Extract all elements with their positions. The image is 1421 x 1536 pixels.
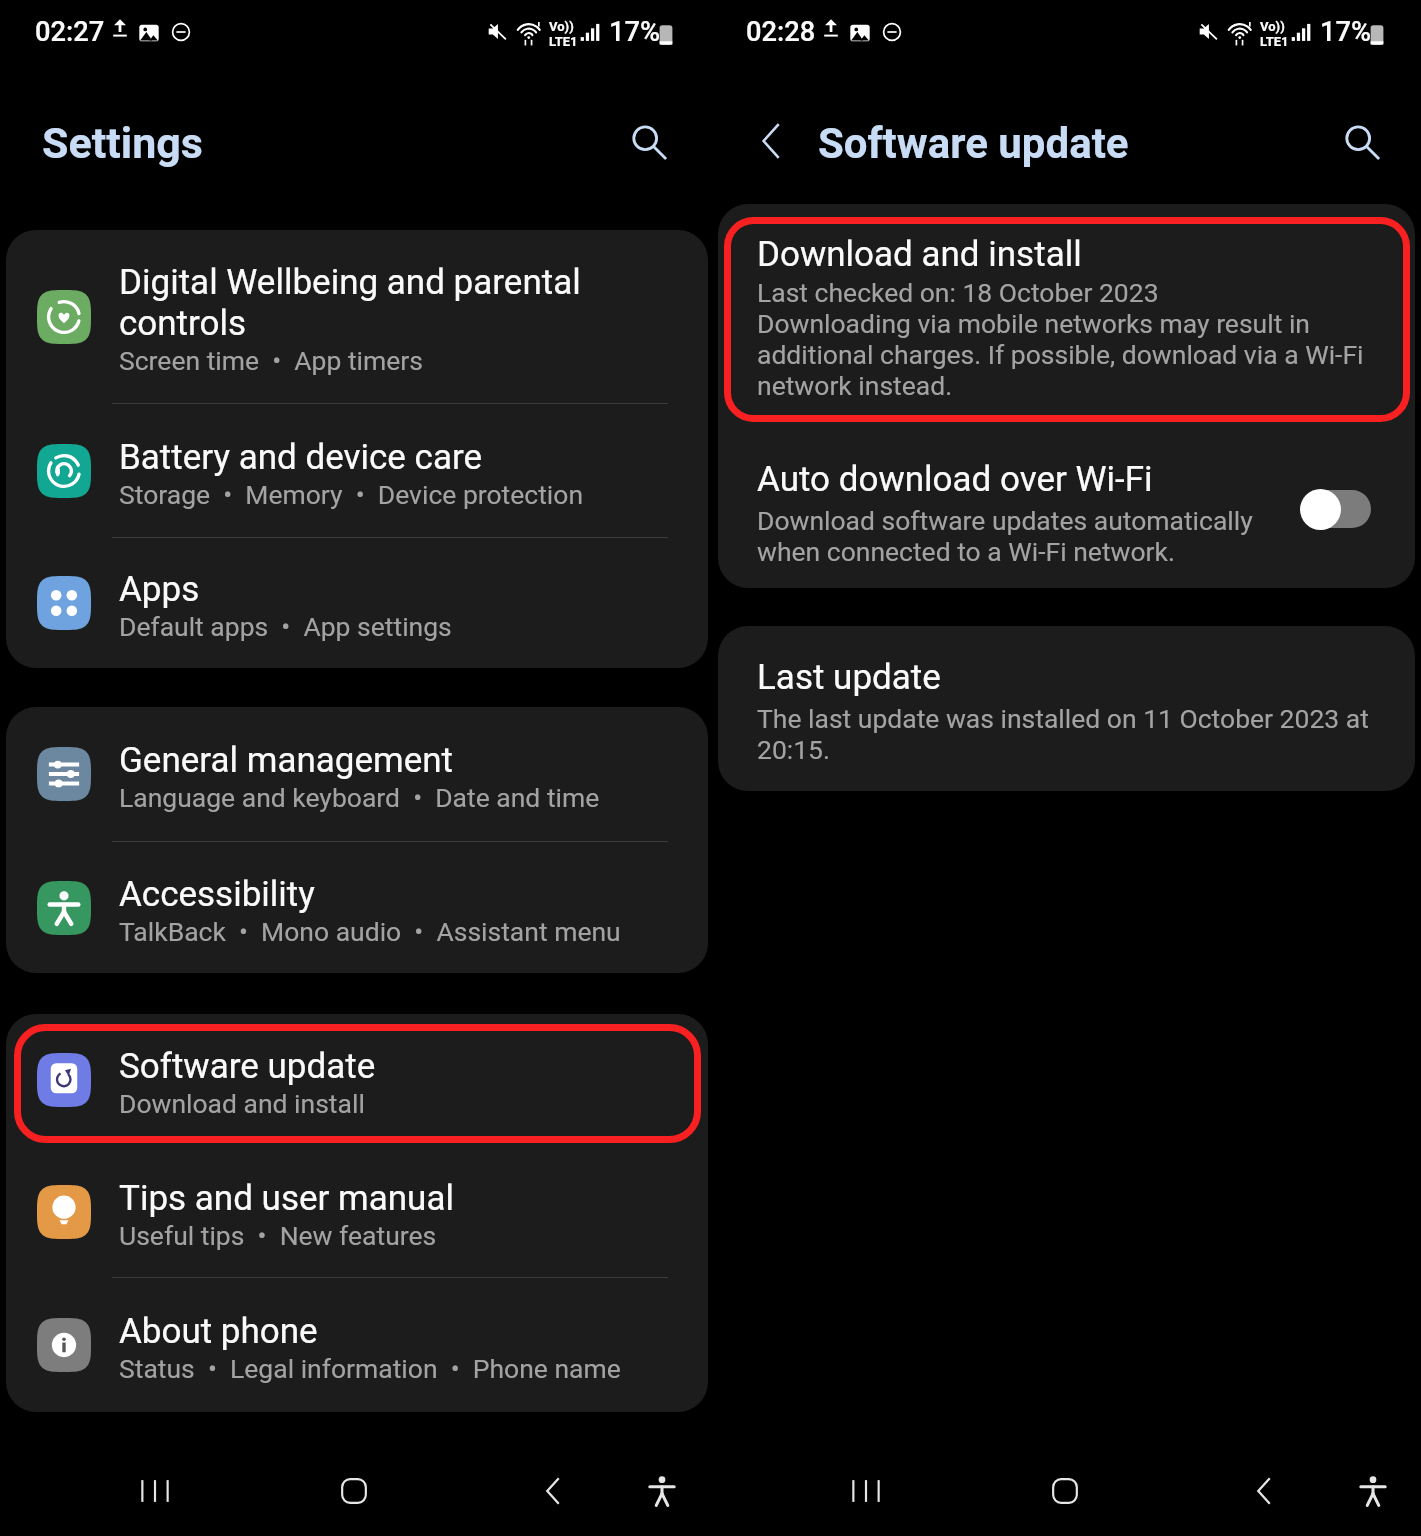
staticText: Digital Wellbeing and parental controls [119,262,581,344]
staticText: LTE1 [1260,34,1289,49]
staticText: Status • Legal information • Phone name [119,1353,621,1385]
button[interactable]: Back [521,1455,585,1527]
staticText: Useful tips • New features [119,1220,437,1252]
staticText: Tips and user manual [119,1178,454,1219]
staticText: Battery and device care [119,437,483,478]
button[interactable]: Tips and user manual [6,1146,708,1277]
staticText: LTE1 [549,34,578,49]
button[interactable]: Accessibility [630,1455,694,1527]
staticText: Vo)) [1260,19,1285,34]
button[interactable]: Software update [6,1014,708,1146]
staticText: About phone [119,1311,318,1352]
staticText: Software update [818,119,1129,169]
staticText: Software update [119,1046,376,1087]
staticText: Language and keyboard • Date and time [119,782,600,814]
button[interactable]: Home [322,1455,386,1527]
button[interactable]: Search [1323,103,1401,181]
staticText: Download and install [119,1088,365,1120]
button[interactable]: Recent apps [834,1455,898,1527]
staticText: Screen time • App timers [119,345,423,377]
staticText: Vo)) [549,19,574,34]
staticText: 17% [1320,19,1372,47]
button[interactable]: Download and install [718,204,1415,430]
button[interactable]: General management [6,707,708,841]
button[interactable]: Accessibility [1341,1455,1405,1527]
staticText: 17% [609,19,661,47]
staticText: 02:27 [35,19,105,47]
staticText: Storage • Memory • Device protection [119,479,584,511]
staticText: Last checked on: 18 October 2023 Downloa… [757,277,1387,401]
staticText: Last update [757,657,941,698]
staticText: Apps [119,569,200,610]
staticText: Download software updates automatically … [757,505,1253,567]
staticText: Default apps • App settings [119,611,452,643]
staticText: Accessibility [119,874,315,915]
button[interactable]: Digital Wellbeing and parental controls [6,230,708,403]
button[interactable]: Auto download over Wi-Fi [718,430,1415,588]
staticText: Download and install [757,234,1082,275]
button[interactable]: Battery and device care [6,404,708,537]
button[interactable]: Back [1232,1455,1296,1527]
button[interactable]: About phone [6,1278,708,1412]
staticText: Auto download over Wi-Fi [757,459,1153,500]
staticText: 02:28 [746,19,816,47]
button[interactable]: Apps [6,538,708,668]
staticText: TalkBack • Mono audio • Assistant menu [119,916,621,948]
button[interactable]: Back [733,102,811,180]
staticText: General management [119,740,454,781]
staticText: The last update was installed on 11 Octo… [757,703,1387,765]
staticText: Settings [42,118,203,169]
button[interactable]: Last update [718,626,1415,791]
button[interactable]: Home [1033,1455,1097,1527]
button[interactable]: Auto download over Wi-Fi [1300,487,1372,531]
button[interactable]: Accessibility [6,842,708,973]
button[interactable]: Recent apps [123,1455,187,1527]
button[interactable]: Search [610,103,688,181]
